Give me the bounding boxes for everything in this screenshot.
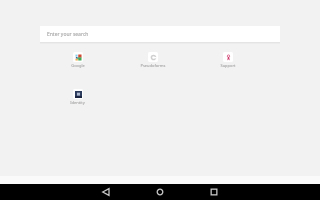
- button[interactable]: Enter your search: [40, 26, 280, 42]
- staticText: Google: [71, 63, 85, 68]
- button[interactable]: Back: [101, 187, 111, 197]
- button[interactable]: Pseudoforms: [115, 52, 190, 68]
- button[interactable]: Identity: [40, 89, 115, 105]
- staticText: Enter your search: [47, 31, 89, 38]
- button[interactable]: Recent apps: [209, 187, 219, 197]
- button[interactable]: Home: [155, 187, 165, 197]
- button[interactable]: Support: [190, 52, 265, 68]
- staticText: Identity: [70, 100, 85, 105]
- staticText: Support: [220, 63, 236, 68]
- button[interactable]: Google: [40, 52, 115, 68]
- staticText: Pseudoforms: [140, 63, 166, 68]
